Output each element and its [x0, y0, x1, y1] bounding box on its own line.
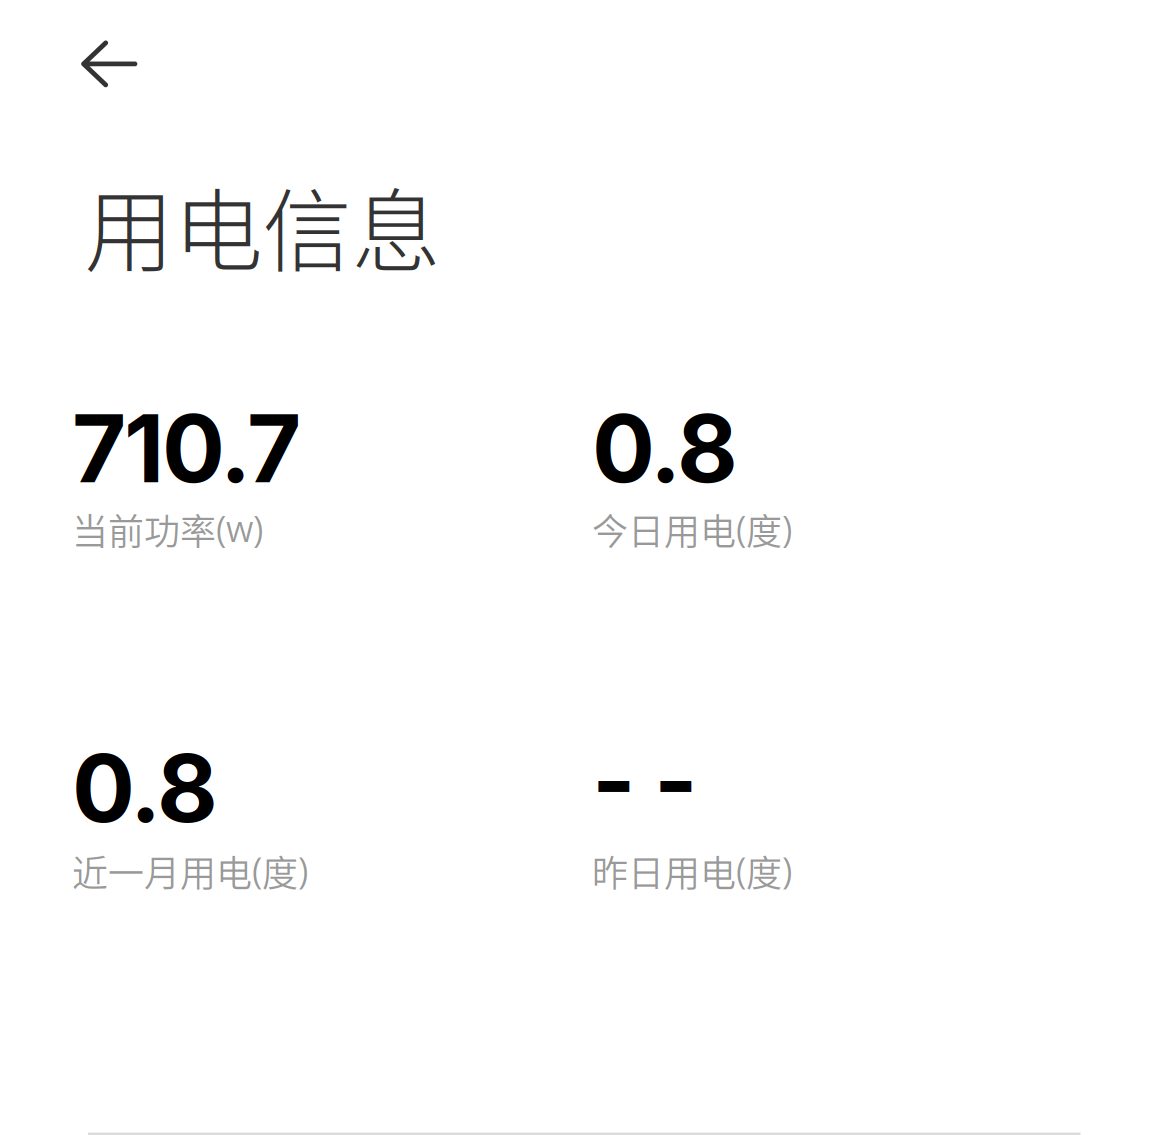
staticText: - - [592, 723, 698, 836]
staticText: 今日用电(度) [592, 503, 792, 555]
staticText: 昨日用电(度) [592, 845, 792, 897]
staticText: 0.8 [592, 392, 738, 505]
staticText: 0.8 [72, 731, 218, 844]
button[interactable]: Back [0, 0, 171, 120]
staticText: 用电信息 [85, 161, 441, 290]
staticText: 710.7 [72, 392, 301, 505]
staticText: 近一月用电(度) [72, 845, 308, 897]
staticText: 当前功率(w) [72, 503, 263, 555]
